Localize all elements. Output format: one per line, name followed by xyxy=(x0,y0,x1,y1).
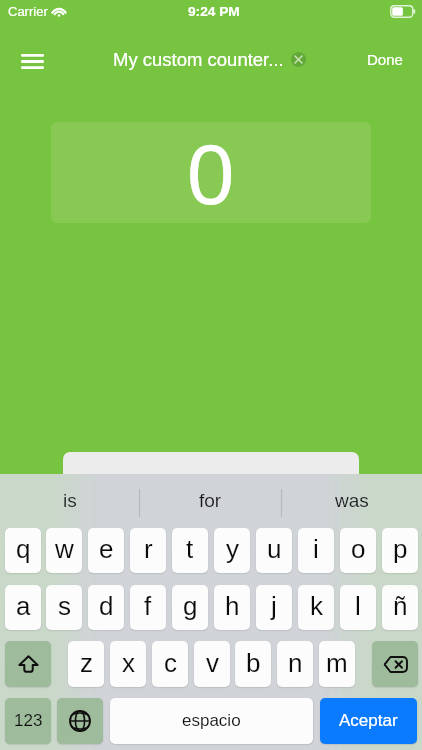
staticText: g xyxy=(183,591,198,620)
staticText: espacio xyxy=(182,711,241,730)
button[interactable]: g xyxy=(172,585,208,630)
button[interactable]: Menu xyxy=(9,38,55,84)
button[interactable]: Clear text xyxy=(291,52,306,67)
staticText: l xyxy=(355,591,361,620)
button[interactable]: c xyxy=(152,641,188,687)
button[interactable]: x xyxy=(110,641,146,687)
staticText: o xyxy=(351,534,366,563)
staticText: f xyxy=(144,591,152,620)
staticText: y xyxy=(226,534,239,563)
staticText: is xyxy=(63,490,77,511)
staticText: c xyxy=(164,648,177,677)
button[interactable]: e xyxy=(88,528,124,573)
button[interactable]: for xyxy=(140,474,281,522)
button[interactable]: f xyxy=(130,585,166,630)
staticText: i xyxy=(313,534,319,563)
staticText: for xyxy=(199,490,222,511)
staticText: Aceptar xyxy=(339,711,398,730)
button[interactable]: l xyxy=(340,585,376,630)
button[interactable]: p xyxy=(382,528,418,573)
staticText: r xyxy=(144,534,153,563)
button[interactable]: Numbers and symbols xyxy=(5,698,51,744)
staticText: u xyxy=(267,534,282,563)
button[interactable]: y xyxy=(214,528,250,573)
button[interactable]: k xyxy=(298,585,334,630)
button[interactable]: Backspace xyxy=(372,641,418,687)
button[interactable]: v xyxy=(194,641,230,687)
button[interactable]: was xyxy=(281,474,422,522)
staticText: was xyxy=(335,490,369,511)
button[interactable]: Shift xyxy=(5,641,51,687)
staticText: w xyxy=(55,534,74,563)
button[interactable]: 0 xyxy=(51,122,371,223)
button[interactable]: a xyxy=(5,585,41,630)
button[interactable]: r xyxy=(130,528,166,573)
button[interactable]: o xyxy=(340,528,376,573)
button[interactable]: d xyxy=(88,585,124,630)
staticText: b xyxy=(246,648,261,677)
staticText: s xyxy=(58,591,71,620)
staticText: 9:24 PM xyxy=(188,4,240,19)
staticText: n xyxy=(288,648,303,677)
button[interactable]: i xyxy=(298,528,334,573)
staticText: e xyxy=(99,534,114,563)
button[interactable]: Aceptar xyxy=(320,698,417,744)
button[interactable]: n xyxy=(277,641,313,687)
button[interactable]: z xyxy=(68,641,104,687)
button[interactable]: b xyxy=(235,641,271,687)
button[interactable]: u xyxy=(256,528,292,573)
button[interactable]: s xyxy=(46,585,82,630)
staticText: d xyxy=(99,591,114,620)
button[interactable]: Change keyboard xyxy=(57,698,103,744)
staticText: m xyxy=(326,648,348,677)
staticText: Carrier xyxy=(8,4,48,19)
staticText: k xyxy=(310,591,323,620)
staticText: My custom counter... xyxy=(113,49,284,70)
staticText: Done xyxy=(367,51,403,68)
staticText: a xyxy=(16,591,31,620)
button[interactable]: m xyxy=(319,641,355,687)
staticText: 123 xyxy=(14,711,43,730)
button[interactable]: t xyxy=(172,528,208,573)
staticText: h xyxy=(225,591,240,620)
staticText: p xyxy=(393,534,408,563)
button[interactable]: w xyxy=(46,528,82,573)
button[interactable]: j xyxy=(256,585,292,630)
button[interactable]: ñ xyxy=(382,585,418,630)
staticText: v xyxy=(206,648,219,677)
staticText: q xyxy=(16,534,31,563)
staticText: 0 xyxy=(187,127,235,222)
staticText: z xyxy=(80,648,93,677)
button[interactable]: q xyxy=(5,528,41,573)
button[interactable]: Done xyxy=(358,36,412,82)
staticText: t xyxy=(186,534,194,563)
staticText: ñ xyxy=(393,591,408,620)
button[interactable]: is xyxy=(0,474,140,522)
staticText: x xyxy=(122,648,135,677)
staticText: j xyxy=(271,591,277,620)
button[interactable]: h xyxy=(214,585,250,630)
button[interactable]: espacio xyxy=(110,698,313,744)
